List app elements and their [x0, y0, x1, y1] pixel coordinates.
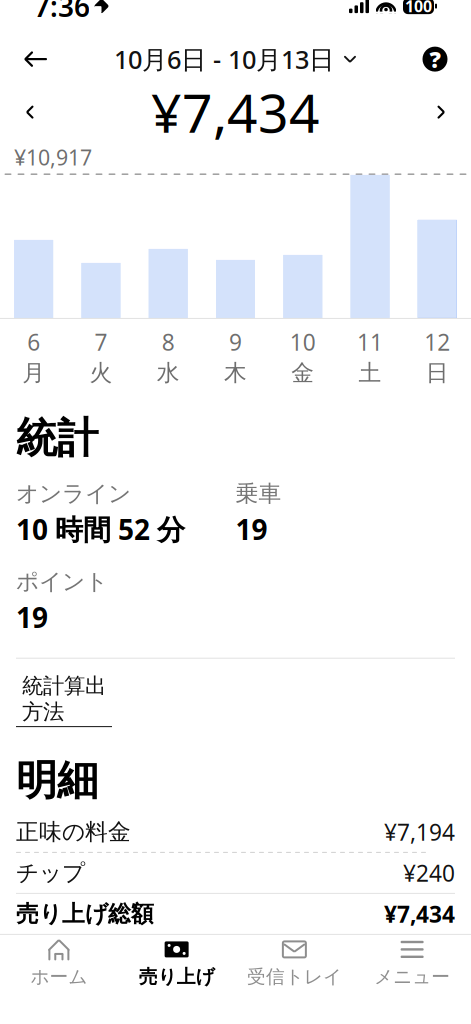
staticText: 10: [290, 327, 316, 357]
staticText: 土: [359, 359, 382, 387]
staticText: ¥7,434: [151, 77, 320, 147]
staticText: 木: [224, 359, 247, 387]
staticText: 100: [405, 0, 432, 17]
button[interactable]: 次の週: [419, 90, 463, 134]
staticText: 19: [235, 510, 267, 548]
staticText: 売り上げ: [139, 965, 215, 988]
staticText: 乗車: [235, 480, 281, 507]
staticText: メニュー: [374, 965, 450, 988]
staticText: 金: [291, 359, 314, 387]
staticText: 統計: [16, 413, 98, 464]
staticText: 10月6日 - 10月13日: [114, 42, 334, 76]
staticText: ¥10,917: [14, 143, 92, 171]
staticText: ¥7,434: [384, 899, 455, 929]
staticText: 水: [157, 359, 180, 387]
staticText: 正味の料金: [16, 818, 131, 846]
button[interactable]: 受信トレイ: [235, 929, 353, 996]
staticText: ポイント: [16, 568, 108, 595]
staticText: 火: [89, 359, 112, 387]
staticText: ¥240: [403, 858, 455, 888]
button[interactable]: ヘルプ: [412, 36, 458, 82]
button[interactable]: 10月6日 - 10月13日: [108, 36, 363, 82]
staticText: 月: [22, 359, 45, 387]
staticText: 受信トレイ: [247, 965, 342, 988]
button[interactable]: 戻る: [13, 36, 59, 82]
staticText: 11: [357, 327, 383, 357]
staticText: ¥7,194: [384, 817, 455, 847]
button[interactable]: 売り上げ: [118, 929, 236, 996]
button[interactable]: メニュー: [353, 929, 471, 996]
button[interactable]: 前の週: [8, 90, 52, 134]
staticText: 9: [229, 327, 242, 357]
staticText: 統計算出方法: [22, 673, 106, 725]
staticText: 10 時間 52 分: [16, 510, 185, 548]
staticText: チップ: [16, 859, 85, 887]
staticText: 8: [162, 327, 175, 357]
staticText: 6: [27, 327, 40, 357]
button[interactable]: ホーム: [0, 929, 118, 996]
button[interactable]: 統計算出方法: [16, 659, 112, 731]
staticText: 明細: [16, 755, 98, 806]
staticText: ホーム: [30, 965, 87, 988]
staticText: ?: [429, 44, 440, 74]
staticText: オンライン: [16, 480, 131, 507]
staticText: 売り上げ総額: [16, 900, 154, 928]
staticText: 7: [94, 327, 107, 357]
staticText: 12: [424, 327, 450, 357]
staticText: 19: [16, 598, 48, 636]
staticText: 日: [426, 359, 449, 387]
staticText: 7:36: [34, 0, 90, 25]
